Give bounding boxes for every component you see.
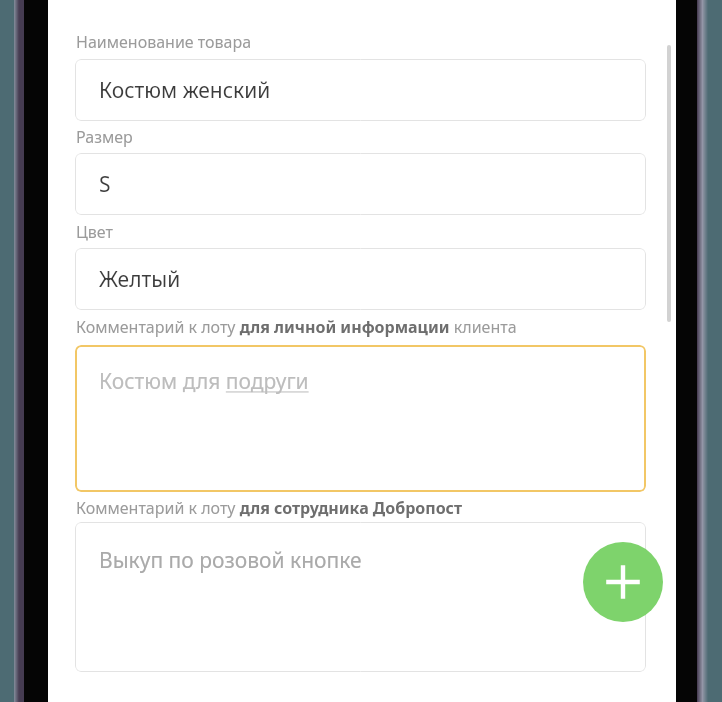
staticText: Костюм женский: [99, 76, 271, 105]
staticText: Выкуп по розовой кнопке: [99, 546, 362, 575]
staticText: Размер: [76, 126, 133, 148]
button[interactable]: S: [75, 153, 646, 215]
staticText: Комментарий к лоту для личной информации…: [76, 316, 517, 338]
button[interactable]: Костюм женский: [75, 59, 646, 121]
staticText: Костюм для подруги: [99, 367, 315, 396]
button[interactable]: Выкуп по розовой кнопке: [75, 522, 646, 672]
staticText: Цвет: [76, 221, 113, 243]
staticText: Наименование товара: [76, 31, 252, 53]
button[interactable]: Добавить: [583, 542, 663, 622]
staticText: S: [99, 170, 111, 199]
button[interactable]: Костюм для подруги: [75, 345, 646, 492]
button[interactable]: Желтый: [75, 248, 646, 310]
staticText: Комментарий к лоту для сотрудника Доброп…: [76, 497, 463, 519]
staticText: Желтый: [99, 265, 181, 294]
